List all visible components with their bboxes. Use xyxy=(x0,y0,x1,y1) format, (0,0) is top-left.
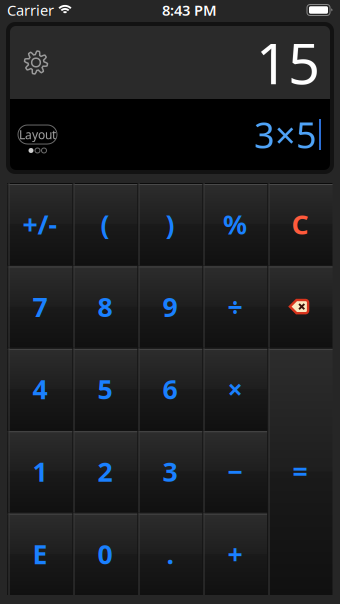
staticText: 8 xyxy=(97,289,112,324)
button[interactable]: + xyxy=(202,513,267,595)
button[interactable]: 4 xyxy=(7,348,72,430)
button[interactable]: ) xyxy=(137,183,202,265)
staticText: 9 xyxy=(162,289,177,324)
button[interactable]: 8 xyxy=(72,265,137,348)
button[interactable]: 1 xyxy=(7,430,72,513)
button[interactable]: 9 xyxy=(137,265,202,348)
staticText: 8:43 PM xyxy=(162,0,217,20)
staticText: 0 xyxy=(97,536,112,571)
staticText: ) xyxy=(165,206,174,242)
button[interactable]: 6 xyxy=(137,348,202,430)
button[interactable]: . xyxy=(137,513,202,595)
button[interactable]: 0 xyxy=(72,513,137,595)
staticText: × xyxy=(227,371,242,407)
staticText: % xyxy=(223,206,247,242)
staticText: 7 xyxy=(32,289,47,324)
staticText: Carrier xyxy=(7,0,54,20)
button[interactable]: 2 xyxy=(72,430,137,513)
staticText: +/- xyxy=(22,206,57,242)
button[interactable]: 7 xyxy=(7,265,72,348)
button[interactable]: 3 xyxy=(137,430,202,513)
button[interactable] xyxy=(267,265,332,348)
button[interactable]: E xyxy=(7,513,72,595)
staticText: E xyxy=(32,536,47,571)
button[interactable]: Settings xyxy=(18,41,54,83)
button[interactable]: × xyxy=(202,348,267,430)
staticText: 3 xyxy=(162,454,177,489)
button[interactable]: ( xyxy=(72,183,137,265)
staticText: 3×5 xyxy=(254,111,317,158)
button[interactable]: ÷ xyxy=(202,265,267,348)
staticText: 5 xyxy=(97,371,112,407)
staticText: = xyxy=(292,454,307,489)
button[interactable]: 5 xyxy=(72,348,137,430)
staticText: + xyxy=(227,536,242,571)
staticText: ( xyxy=(100,206,109,242)
staticText: ÷ xyxy=(227,289,242,324)
staticText: 2 xyxy=(97,454,112,489)
button[interactable]: Layout xyxy=(18,125,57,144)
button[interactable]: = xyxy=(267,348,332,595)
staticText: 1 xyxy=(32,454,47,489)
button[interactable]: % xyxy=(202,183,267,265)
staticText: − xyxy=(227,454,242,489)
staticText: 4 xyxy=(32,371,47,407)
staticText: . xyxy=(166,536,173,571)
staticText: C xyxy=(291,206,308,242)
button[interactable]: − xyxy=(202,430,267,513)
staticText: 15 xyxy=(256,25,320,100)
button[interactable]: +/- xyxy=(7,183,72,265)
button[interactable]: C xyxy=(267,183,332,265)
staticText: 6 xyxy=(162,371,177,407)
staticText: Layout xyxy=(19,126,56,142)
